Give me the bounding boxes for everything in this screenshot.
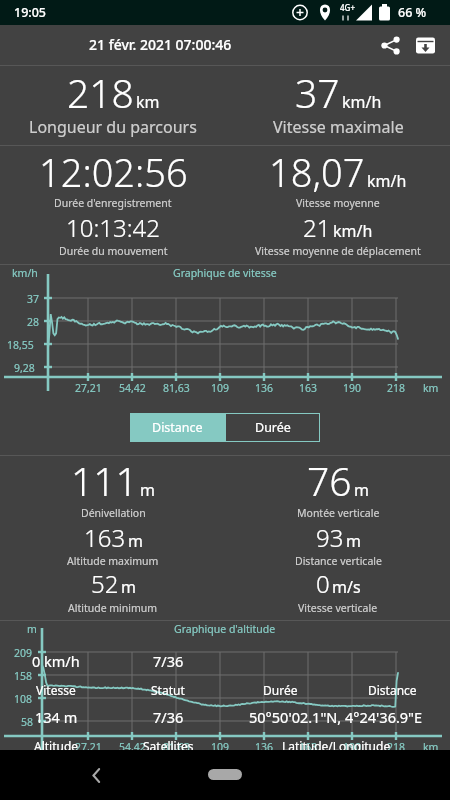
staticText: Montée verticale (297, 506, 380, 520)
staticText: m (121, 576, 136, 598)
staticText: Durée d'enregistrement (54, 196, 172, 210)
staticText: 0 (316, 567, 330, 600)
staticText: 111 (71, 454, 138, 507)
staticText: 19:05 (14, 4, 47, 21)
staticText: 218 (67, 66, 134, 119)
staticText: 37 (295, 66, 340, 119)
staticText: Distance verticale (295, 554, 382, 568)
button[interactable]: Durée (225, 413, 320, 442)
staticText: 7/36 (153, 651, 184, 671)
staticText: 136 (255, 740, 274, 754)
staticText: Latitude/Longitude (282, 738, 391, 754)
staticText: Dénivellation (81, 506, 146, 520)
staticText: km/h (342, 91, 382, 113)
staticText: km (136, 91, 160, 113)
staticText: 18,55 (7, 338, 34, 352)
staticText: Durée (263, 682, 298, 698)
staticText: 76 (307, 454, 352, 507)
staticText: 190 (343, 740, 362, 754)
staticText: Graphique de vitesse (173, 266, 277, 280)
button[interactable]: Distance (130, 413, 225, 442)
staticText: Vitesse moyenne (296, 196, 380, 210)
staticText: 66 % (398, 4, 427, 21)
staticText: m/s (332, 576, 361, 598)
staticText: 134 m (35, 707, 78, 727)
staticText: m (27, 622, 37, 636)
staticText: 209 (14, 646, 33, 660)
staticText: Vitesse (36, 682, 76, 698)
staticText: m (346, 530, 361, 552)
staticText: 108 (14, 692, 33, 706)
staticText: km (423, 740, 439, 754)
staticText: km/h (333, 220, 373, 242)
staticText: 81,63 (163, 381, 190, 395)
staticText: Altitude maximum (67, 554, 159, 568)
staticText: 9,28 (14, 361, 35, 375)
button[interactable]: Partager (370, 25, 410, 65)
staticText: 27,21 (75, 740, 102, 754)
staticText: Vitesse maximale (273, 116, 404, 138)
staticText: 54,42 (119, 740, 146, 754)
staticText: 18,07 (269, 146, 365, 198)
staticText: Altitude minimum (68, 601, 158, 615)
staticText: 93 (316, 521, 344, 554)
button[interactable]: Exporter (405, 25, 445, 65)
staticText: 21 (303, 211, 331, 244)
staticText: Durée (255, 419, 291, 436)
staticText: 4G+ (340, 2, 355, 13)
staticText: 81,63 (163, 740, 190, 754)
staticText: Altitude (34, 738, 79, 754)
staticText: 163 (84, 521, 126, 554)
staticText: 158 (14, 669, 33, 683)
staticText: 163 (299, 381, 318, 395)
staticText: 52 (91, 567, 119, 600)
staticText: Vitesse moyenne de déplacement (255, 244, 421, 258)
staticText: 12:02:56 (39, 146, 188, 198)
staticText: km/h (12, 266, 38, 280)
staticText: km (423, 381, 439, 395)
button[interactable]: Retour (78, 757, 114, 793)
staticText: 37 (27, 292, 40, 306)
staticText: 28 (27, 315, 40, 329)
staticText: 0 km/h (32, 651, 80, 671)
staticText: 218 (387, 381, 406, 395)
staticText: 109 (211, 740, 230, 754)
staticText: km/h (367, 170, 407, 192)
staticText: m (128, 530, 143, 552)
staticText: Statut (151, 682, 185, 698)
staticText: m (354, 479, 369, 501)
staticText: Longueur du parcours (29, 116, 197, 138)
staticText: Vitesse verticale (298, 601, 378, 615)
staticText: Distance (152, 419, 203, 436)
staticText: 109 (211, 381, 230, 395)
button[interactable]: Accueil (208, 769, 242, 780)
staticText: 21 févr. 2021 07:00:46 (89, 35, 232, 54)
staticText: 218 (387, 740, 406, 754)
staticText: 136 (255, 381, 274, 395)
staticText: 27,21 (75, 381, 102, 395)
staticText: 54,42 (119, 381, 146, 395)
staticText: 163 (299, 740, 318, 754)
staticText: 7/36 (153, 707, 184, 727)
staticText: 58 (21, 715, 34, 729)
staticText: Distance (368, 682, 417, 698)
staticText: Durée du mouvement (59, 244, 168, 258)
staticText: 190 (343, 381, 362, 395)
staticText: Satellites (143, 738, 194, 754)
staticText: Graphique d'altitude (174, 622, 276, 636)
staticText: m (140, 479, 155, 501)
staticText: 50°50'02.1"N, 4°24'36.9"E (249, 707, 423, 727)
staticText: 10:13:42 (66, 211, 160, 244)
